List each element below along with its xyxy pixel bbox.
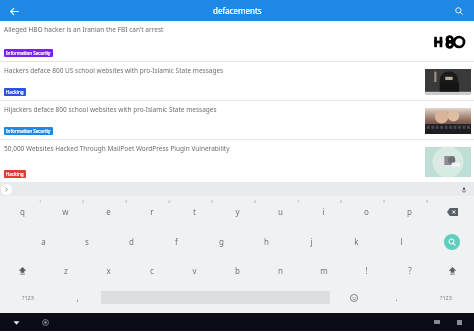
button[interactable]: Recents [430,315,444,329]
button[interactable]: s [65,227,109,256]
button[interactable]: j [289,227,334,256]
staticText: 1 [39,199,42,204]
staticText: Hacking [6,89,24,95]
staticText: 2 [82,199,85,204]
button[interactable]: Expand suggestions [1,184,12,195]
button[interactable]: ?123 [0,285,56,310]
staticText: r [150,206,154,217]
button[interactable]: e [87,196,130,227]
staticText: 6 [254,199,257,204]
button[interactable]: k [334,227,379,256]
button[interactable]: g [199,227,244,256]
staticText: i [322,206,325,217]
staticText: v [192,265,197,276]
staticText: q [20,206,25,217]
button[interactable]: ! [345,256,388,285]
staticText: t [193,206,196,217]
staticText: 7 [297,199,300,204]
button[interactable]: u [259,196,302,227]
button[interactable]: i [302,196,345,227]
button[interactable]: w [44,196,87,227]
staticText: l [400,236,403,247]
button[interactable]: l [379,227,424,256]
button[interactable]: Back [5,2,23,20]
staticText: . [395,292,398,303]
button[interactable]: q [0,196,44,227]
staticText: Hackers deface 800 US school websites wi… [4,66,224,75]
button[interactable]: Shift [0,256,44,285]
staticText: ? [408,265,412,276]
staticText: j [310,236,313,247]
button[interactable]: x [87,256,130,285]
staticText: 50,000 Websites Hacked Through MailPoet … [4,144,230,153]
staticText: Information Security [6,128,51,134]
button[interactable]: . [375,285,418,310]
button[interactable]: c [130,256,173,285]
staticText: h [264,236,269,247]
staticText: g [219,236,224,247]
button[interactable]: , [56,285,99,310]
staticText: c [150,265,154,276]
staticText: 3 [125,199,128,204]
button[interactable]: Hackers deface 800 US school websites wi… [0,62,474,100]
staticText: k [354,236,359,247]
staticText: defacements [213,5,262,16]
button[interactable]: z [44,256,87,285]
button[interactable]: y [216,196,259,227]
button[interactable]: h [244,227,289,256]
button[interactable]: Shift [431,256,474,285]
button[interactable]: v [173,256,216,285]
staticText: u [278,206,283,217]
staticText: 0 [426,199,429,204]
button[interactable]: n [259,256,302,285]
button[interactable]: Hijackers deface 800 school websites wit… [0,101,474,139]
staticText: b [235,265,240,276]
button[interactable]: ?123 [418,285,474,310]
staticText: ?123 [440,294,452,301]
button[interactable]: Backspace [431,196,474,227]
staticText: o [364,206,369,217]
button[interactable]: b [216,256,259,285]
button[interactable]: ? [388,256,431,285]
staticText: 8 [340,199,343,204]
button[interactable]: Emoji [332,285,375,310]
staticText: ?123 [22,294,34,301]
button[interactable]: t [173,196,216,227]
button[interactable]: 50,000 Websites Hacked Through MailPoet … [0,140,474,182]
staticText: ! [365,265,368,276]
staticText: e [106,206,111,217]
staticText: s [85,236,89,247]
button[interactable]: Alleged HBO hacker is an Iranian the FBI… [0,21,474,61]
staticText: p [407,206,412,217]
staticText: 4 [168,199,171,204]
button[interactable]: o [345,196,388,227]
button[interactable]: p [388,196,431,227]
staticText: Alleged HBO hacker is an Iranian the FBI… [4,25,164,34]
button[interactable]: Search [450,2,468,20]
staticText: f [175,236,178,247]
staticText: 9 [383,199,386,204]
button[interactable]: Search [429,227,474,256]
button[interactable]: f [154,227,199,256]
staticText: a [41,236,46,247]
staticText: 5 [211,199,214,204]
button[interactable]: Hide keyboard [9,315,23,329]
staticText: z [64,265,68,276]
staticText: Hacking [6,171,24,177]
button[interactable]: a [21,227,65,256]
button[interactable]: r [130,196,173,227]
staticText: m [320,265,328,276]
button[interactable]: Voice input [458,184,469,195]
staticText: , [76,292,79,303]
staticText: y [235,206,240,217]
staticText: w [62,206,69,217]
button[interactable]: d [109,227,154,256]
staticText: n [278,265,283,276]
button[interactable]: m [302,256,345,285]
staticText: Information Security [6,50,51,56]
staticText: d [129,236,134,247]
staticText: x [106,265,111,276]
button[interactable]: Home [38,315,52,329]
button[interactable]: Menu [452,315,466,329]
